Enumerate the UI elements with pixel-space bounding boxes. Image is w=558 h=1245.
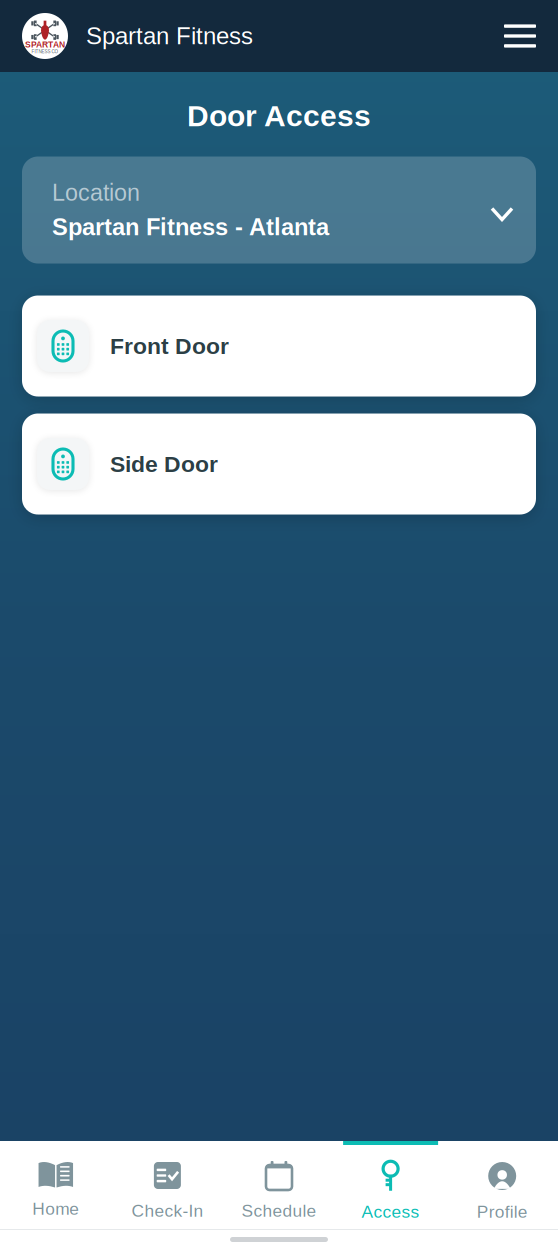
staticText: Spartan Fitness — [86, 23, 253, 49]
button[interactable]: Side Door — [22, 413, 536, 514]
button[interactable]: Location — [22, 156, 536, 263]
button[interactable]: Home — [0, 1141, 112, 1229]
button[interactable]: Check-In — [112, 1141, 223, 1229]
staticText: Schedule — [241, 1201, 316, 1220]
staticText: Access — [362, 1202, 420, 1221]
staticText: Home — [32, 1199, 79, 1218]
staticText: Side Door — [110, 451, 218, 477]
staticText: Profile — [477, 1202, 528, 1221]
button[interactable]: Access — [335, 1141, 446, 1229]
button[interactable]: Menu — [490, 13, 536, 59]
staticText: Check-In — [131, 1201, 203, 1220]
staticText: Location — [52, 180, 140, 206]
button[interactable]: Profile — [446, 1141, 558, 1229]
button[interactable]: Front Door — [22, 295, 536, 396]
staticText: SPARTAN — [25, 40, 65, 49]
button[interactable]: Schedule — [223, 1141, 335, 1229]
staticText: Front Door — [110, 333, 229, 359]
staticText: Door Access — [187, 99, 371, 132]
staticText: FITNESS CO — [31, 49, 58, 54]
staticText: Spartan Fitness - Atlanta — [52, 214, 329, 240]
